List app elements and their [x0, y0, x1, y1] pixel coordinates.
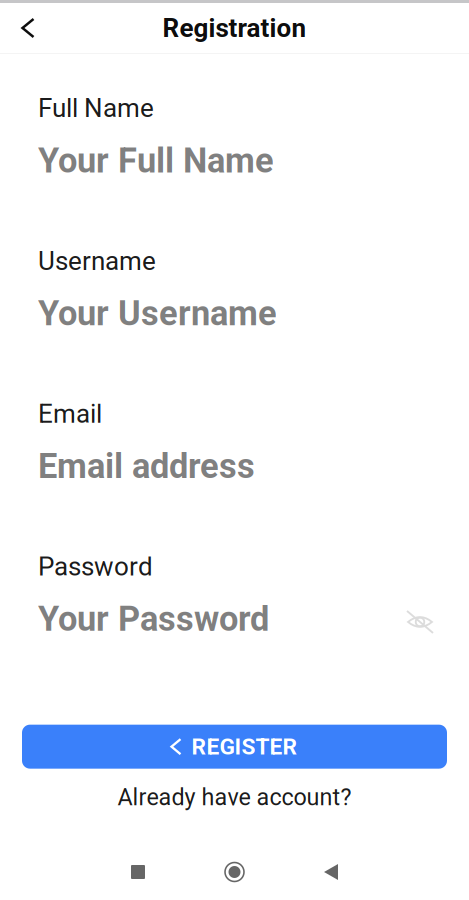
staticText: Email address: [38, 446, 255, 486]
staticText: Username: [38, 246, 156, 276]
staticText: Already have account?: [117, 784, 351, 811]
staticText: Registration: [162, 13, 306, 43]
staticText: Full Name: [38, 93, 154, 123]
button[interactable]: Recent apps: [114, 848, 162, 896]
button[interactable]: Back: [307, 848, 355, 896]
staticText: REGISTER: [191, 733, 297, 760]
staticText: Your Username: [38, 293, 277, 333]
button[interactable]: Show password: [403, 605, 437, 639]
button[interactable]: Home: [210, 848, 258, 896]
button[interactable]: Back: [6, 4, 50, 51]
staticText: Password: [38, 551, 153, 582]
button[interactable]: Already have account?: [117, 784, 351, 811]
staticText: Your Full Name: [38, 140, 274, 181]
staticText: Your Password: [38, 599, 269, 639]
button[interactable]: REGISTER: [22, 725, 447, 769]
staticText: Email: [38, 399, 102, 429]
